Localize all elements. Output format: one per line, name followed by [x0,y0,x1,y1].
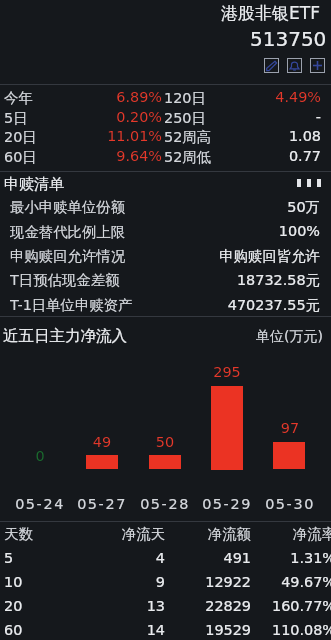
staticText: 0.20% [4,109,162,126]
staticText: 12922 [151,574,251,591]
button[interactable]: 申购赎回允许情况 [0,247,331,264]
button[interactable]: 5日 [0,109,331,126]
staticText: 14 [65,622,165,639]
staticText: 97 [260,420,320,437]
staticText: 52周低 [164,148,212,165]
staticText: 05-24 [5,496,75,513]
staticText: - [164,109,321,126]
button[interactable]: 60 [0,622,331,639]
staticText: 52周高 [164,128,212,145]
staticText: 05-29 [192,496,262,513]
staticText: 19529 [151,622,251,639]
button[interactable]: Add to watchlist [310,58,325,73]
staticText: 净流额 [151,525,251,542]
button[interactable]: Price alert [287,58,302,73]
button[interactable]: 现金替代比例上限 [0,223,331,240]
staticText: 9.64% [4,148,162,165]
staticText: 13 [65,598,165,615]
button[interactable]: 今年 [0,89,331,106]
staticText: 最小申赎单位份额 [10,198,126,215]
staticText: 100% [0,223,320,240]
staticText: 单位(万元) [256,328,323,346]
button[interactable]: More options [297,179,321,187]
staticText: 05-30 [255,496,325,513]
staticText: 6.89% [4,89,162,106]
staticText: 05-28 [130,496,200,513]
staticText: 4.49% [164,89,321,106]
staticText: 60 [4,622,23,639]
button[interactable]: 20日 [0,128,331,145]
staticText: 0.77 [164,148,321,165]
staticText: 港股非银ETF [221,3,320,24]
staticText: 现金替代比例上限 [10,223,126,240]
staticText: 60日 [4,148,37,165]
staticText: 11.01% [4,128,162,145]
staticText: 9 [65,574,165,591]
staticText: 1.31% [236,550,331,567]
staticText: 净流率 [236,525,331,542]
staticText: 160.77% [236,598,331,615]
staticText: 18732.58元 [0,271,320,288]
staticText: T-1日单位申赎资产 [10,296,133,313]
staticText: 1.08 [164,128,321,145]
staticText: 120日 [164,89,206,106]
staticText: 4 [65,550,165,567]
staticText: 22829 [151,598,251,615]
staticText: 申购赎回允许情况 [10,247,126,264]
button[interactable]: 5 [0,550,331,567]
staticText: 470237.55元 [0,296,320,313]
staticText: 今年 [4,89,33,106]
button[interactable]: 最小申赎单位份额 [0,198,331,215]
button[interactable]: T日预估现金差额 [0,271,331,288]
staticText: 20日 [4,128,37,145]
staticText: 申赎清单 [4,175,64,194]
staticText: 295 [197,364,257,381]
staticText: 50万 [0,198,320,215]
staticText: 5日 [4,109,28,126]
staticText: 49 [72,434,132,451]
staticText: 513750 [250,27,327,50]
staticText: 20 [4,598,23,615]
button[interactable]: Edit [264,58,279,73]
staticText: 天数 [4,525,33,542]
staticText: 5 [4,550,14,567]
staticText: 净流天 [65,525,165,542]
staticText: 50 [135,434,195,451]
staticText: 05-27 [67,496,137,513]
staticText: 0 [10,448,70,465]
button[interactable]: T-1日单位申赎资产 [0,296,331,313]
button[interactable]: 天数 [0,525,331,542]
button[interactable]: 10 [0,574,331,591]
staticText: 10 [4,574,23,591]
staticText: 近五日主力净流入 [3,326,127,346]
staticText: 申购赎回皆允许 [0,247,320,264]
staticText: 250日 [164,109,206,126]
button[interactable]: 60日 [0,148,331,165]
staticText: T日预估现金差额 [10,271,120,288]
staticText: 491 [151,550,251,567]
button[interactable]: 20 [0,598,331,615]
staticText: 110.08% [236,622,331,639]
staticText: 49.67% [236,574,331,591]
